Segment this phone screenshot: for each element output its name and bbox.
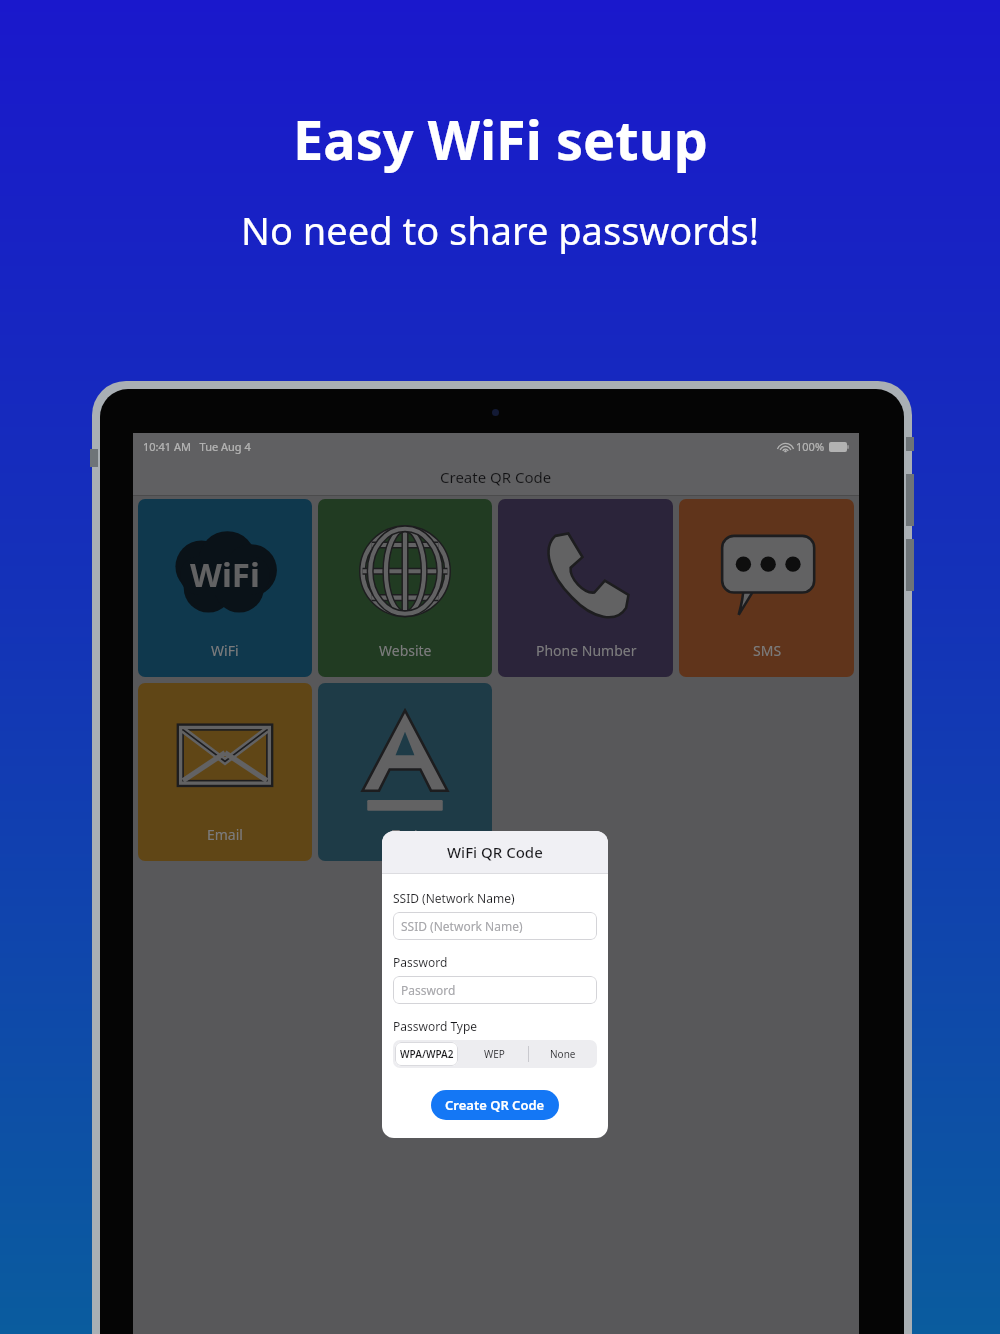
staticText: Create QR Code: [445, 1096, 545, 1114]
button[interactable]: SSID (Network Name): [393, 912, 597, 940]
staticText: Phone Number: [536, 641, 637, 660]
staticText: Password: [401, 982, 456, 998]
button[interactable]: Password: [393, 976, 597, 1004]
staticText: Password Type: [393, 1018, 478, 1034]
staticText: WPA/WPA2: [400, 1047, 454, 1061]
button[interactable]: WiFi: [138, 499, 312, 677]
staticText: SMS: [753, 641, 782, 660]
button[interactable]: WEP: [460, 1040, 528, 1068]
staticText: Create QR Code: [440, 467, 552, 487]
button[interactable]: Create QR Code: [431, 1090, 559, 1120]
staticText: Text: [392, 825, 419, 844]
staticText: SSID (Network Name): [393, 890, 515, 906]
staticText: Website: [379, 641, 432, 660]
button[interactable]: Phone Number: [498, 499, 673, 677]
button[interactable]: Email: [138, 683, 312, 861]
staticText: 100%: [796, 439, 825, 454]
staticText: SSID (Network Name): [401, 918, 523, 934]
staticText: Easy WiFi setup: [293, 102, 708, 176]
staticText: WiFi: [211, 641, 239, 660]
staticText: 10:41 AM Tue Aug 4: [143, 439, 251, 454]
staticText: WiFi QR Code: [447, 842, 543, 862]
button[interactable]: None: [529, 1040, 597, 1068]
button[interactable]: WPA/WPA2: [395, 1042, 458, 1066]
staticText: No need to share passwords!: [241, 204, 759, 256]
staticText: WiFi: [190, 552, 260, 597]
button[interactable]: Website: [318, 499, 492, 677]
staticText: Password: [393, 954, 448, 970]
staticText: None: [550, 1047, 576, 1061]
button[interactable]: SMS: [679, 499, 854, 677]
button[interactable]: Text: [318, 683, 492, 861]
staticText: WEP: [484, 1047, 505, 1061]
staticText: Email: [207, 825, 243, 844]
